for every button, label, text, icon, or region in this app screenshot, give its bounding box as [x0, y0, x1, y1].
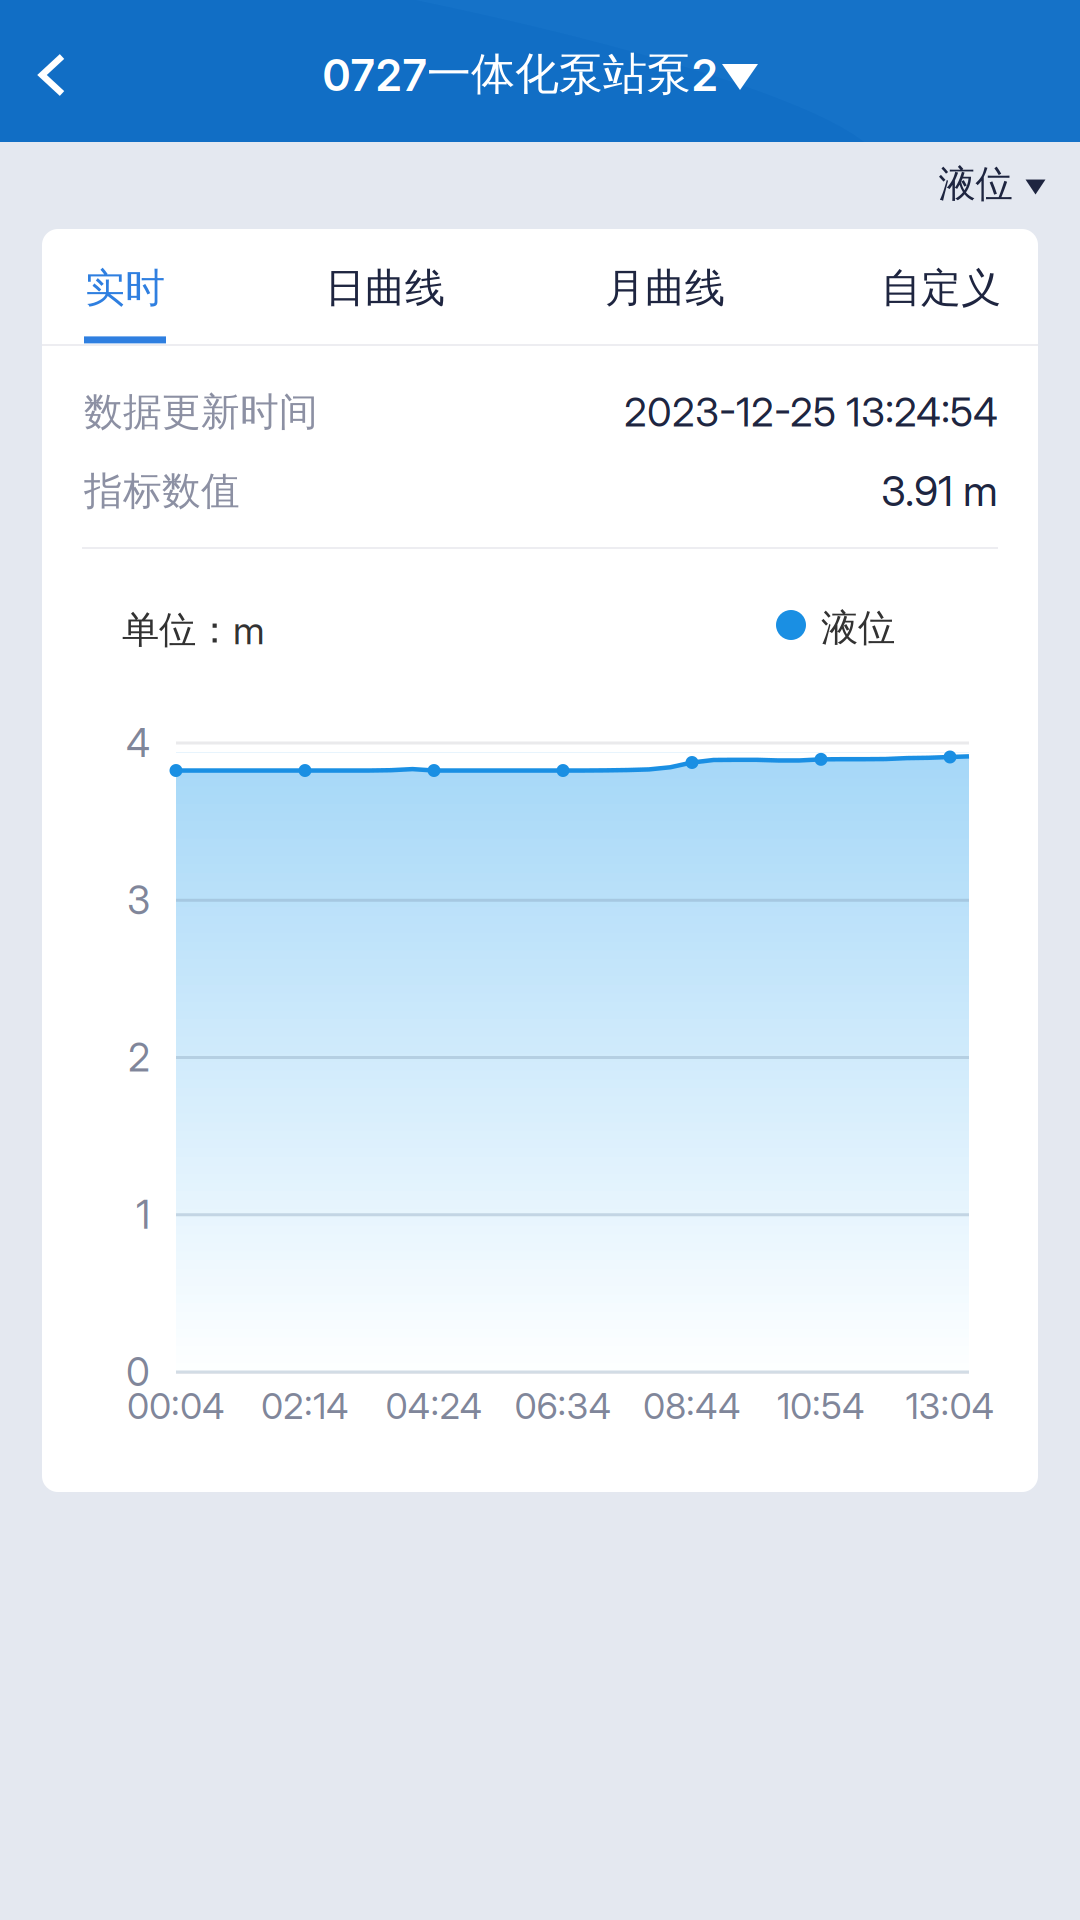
button[interactable]: 0727一体化泵站泵2: [308, 28, 772, 120]
staticText: 0727一体化泵站泵2: [322, 46, 718, 102]
button[interactable]: 实时: [10, 229, 240, 345]
staticText: 02:14: [261, 1384, 349, 1428]
staticText: 00:04: [127, 1384, 225, 1428]
staticText: 单位：m: [122, 606, 265, 653]
button[interactable]: 月曲线: [550, 229, 780, 345]
button[interactable]: 自定义: [826, 229, 1056, 345]
staticText: 04:24: [385, 1384, 482, 1428]
staticText: 0: [126, 1349, 150, 1395]
staticText: 08:44: [643, 1384, 741, 1428]
staticText: 实时: [85, 263, 165, 313]
button[interactable]: 日曲线: [270, 229, 500, 345]
staticText: 指标数值: [84, 467, 240, 515]
button[interactable]: Back: [6, 20, 98, 129]
staticText: 月曲线: [605, 263, 725, 313]
staticText: 4: [126, 720, 150, 766]
staticText: 3: [127, 877, 150, 924]
staticText: 日曲线: [325, 263, 445, 313]
staticText: 液位: [821, 604, 895, 651]
staticText: 液位: [938, 160, 1012, 207]
staticText: 3.91 m: [881, 466, 998, 516]
staticText: 06:34: [514, 1384, 611, 1428]
button[interactable]: 液位: [918, 144, 1065, 223]
staticText: 10:54: [777, 1384, 865, 1428]
staticText: 数据更新时间: [84, 388, 318, 436]
staticText: 1: [136, 1191, 150, 1238]
staticText: 2023-12-25 13:24:54: [624, 388, 998, 436]
staticText: 13:04: [905, 1384, 994, 1428]
staticText: 2: [128, 1034, 150, 1081]
staticText: 自定义: [881, 263, 1001, 313]
